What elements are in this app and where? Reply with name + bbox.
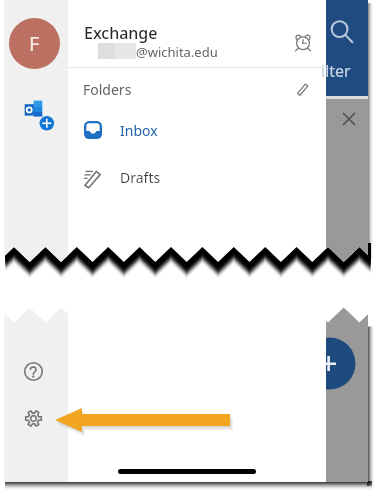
button[interactable]: Close: [343, 113, 355, 125]
staticText: F: [29, 30, 40, 57]
staticText: ilter: [321, 60, 351, 82]
button[interactable]: Help: [24, 362, 43, 381]
button[interactable]: Settings: [24, 409, 43, 428]
button[interactable]: New message: [326, 338, 354, 390]
button[interactable]: Account avatar: [9, 18, 60, 69]
staticText: Drafts: [120, 168, 161, 187]
button[interactable]: Alarm: [294, 33, 312, 51]
staticText: Inbox: [120, 121, 158, 140]
button[interactable]: Inbox: [76, 113, 306, 147]
staticText: Exchange: [84, 22, 158, 44]
staticText: Folders: [83, 80, 132, 99]
button[interactable]: Edit folders: [296, 82, 309, 95]
staticText: @wichita.edu: [136, 43, 218, 61]
button[interactable]: Drafts: [76, 160, 306, 194]
button[interactable]: Search: [330, 20, 354, 44]
button[interactable]: Add account: [18, 95, 58, 135]
